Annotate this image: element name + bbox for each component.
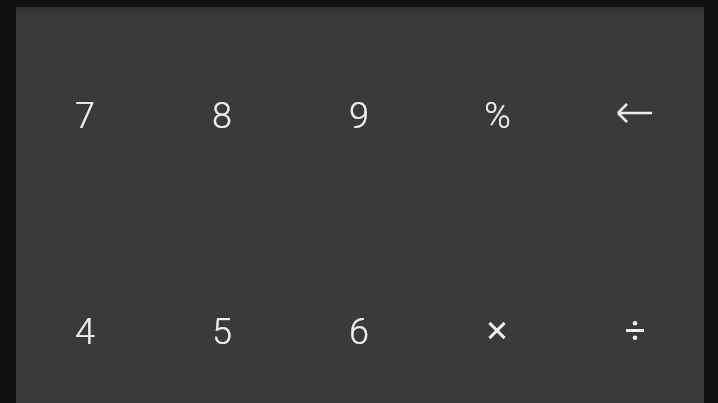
staticText: 8 xyxy=(212,95,232,137)
staticText: 7 xyxy=(75,95,95,137)
button[interactable]: 5 xyxy=(153,224,290,403)
staticText: % xyxy=(484,95,511,137)
button[interactable]: Divide xyxy=(566,224,704,403)
staticText: 6 xyxy=(349,311,369,353)
button[interactable]: 7 xyxy=(16,8,153,224)
button[interactable]: Backspace xyxy=(566,8,704,224)
button[interactable]: Multiply xyxy=(428,224,566,403)
staticText: 4 xyxy=(75,311,95,353)
button[interactable]: % xyxy=(428,8,566,224)
button[interactable]: 4 xyxy=(16,224,153,403)
staticText: 9 xyxy=(349,95,369,137)
button[interactable]: 9 xyxy=(290,8,428,224)
button[interactable]: 8 xyxy=(153,8,290,224)
staticText: 5 xyxy=(212,311,232,353)
button[interactable]: 6 xyxy=(290,224,428,403)
